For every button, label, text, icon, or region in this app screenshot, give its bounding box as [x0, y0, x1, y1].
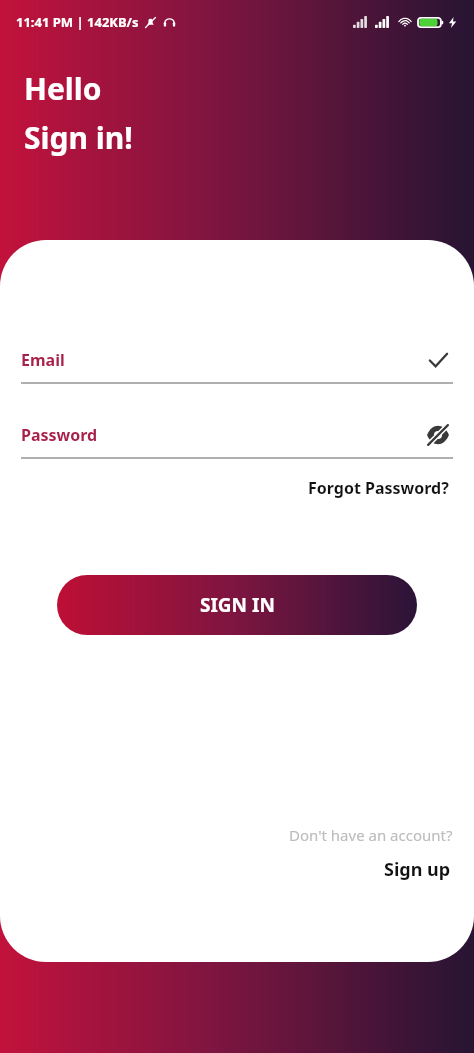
staticText: Forgot Password?	[308, 477, 449, 499]
staticText: Password	[21, 424, 98, 446]
button[interactable]: Email	[21, 338, 453, 382]
staticText: Email	[21, 349, 65, 371]
staticText: 11:41 PM | 142KB/s	[16, 13, 139, 31]
staticText: Hello	[24, 68, 102, 109]
other: Email valid	[423, 345, 453, 375]
staticText: Sign in!	[24, 117, 133, 158]
button[interactable]: Forgot Password?	[304, 473, 453, 503]
staticText: Sign up	[384, 857, 451, 882]
staticText: Don't have an account?	[289, 825, 453, 845]
staticText: SIGN IN	[200, 592, 275, 618]
button[interactable]: Sign up	[382, 855, 453, 884]
button[interactable]: Password	[21, 413, 453, 457]
button[interactable]: Show password	[423, 420, 453, 450]
button[interactable]: SIGN IN	[57, 575, 417, 635]
